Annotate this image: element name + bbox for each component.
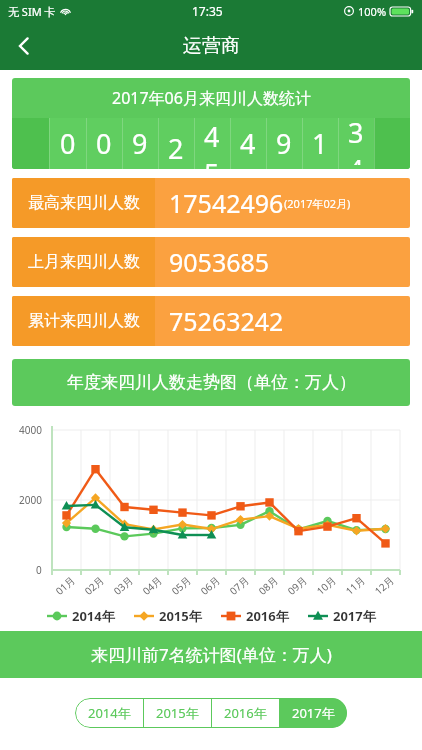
button[interactable]: Back: [0, 22, 48, 70]
staticText: 2014年: [88, 704, 131, 722]
button[interactable]: 2015年: [133, 607, 202, 625]
staticText: 3: [348, 114, 364, 151]
button[interactable]: 来四川前7名统计图(单位：万人): [0, 631, 422, 678]
staticText: 9: [276, 125, 292, 162]
staticText: 2: [168, 130, 184, 167]
staticText: 0: [96, 125, 112, 162]
staticText: 2015年: [159, 607, 202, 625]
staticText: 无 SIM 卡: [8, 4, 56, 19]
staticText: 2017年: [333, 607, 376, 625]
button[interactable]: 2017年06月来四川人数统计: [12, 78, 410, 169]
staticText: 100%: [358, 4, 387, 19]
staticText: 17:35: [192, 3, 223, 19]
button[interactable]: 2017年: [279, 698, 347, 728]
staticText: 4: [204, 118, 220, 155]
staticText: 2016年: [224, 704, 267, 722]
staticText: 5: [204, 155, 220, 169]
staticText: 2016年: [246, 607, 289, 625]
staticText: 0: [60, 125, 76, 162]
button[interactable]: 2014年: [46, 607, 115, 625]
staticText: 来四川前7名统计图(单位：万人): [91, 643, 332, 666]
button[interactable]: 2017年: [307, 607, 376, 625]
staticText: 运营商: [183, 34, 240, 58]
staticText: 75263242: [169, 304, 284, 338]
button[interactable]: 2016年: [211, 698, 279, 728]
staticText: 累计来四川人数: [28, 311, 140, 331]
staticText: 9: [132, 125, 148, 162]
staticText: 4: [348, 151, 364, 165]
staticText: 2015年: [156, 704, 199, 722]
staticText: 年度来四川人数走势图（单位：万人）: [67, 372, 356, 393]
button[interactable]: 年度来四川人数走势图（单位：万人）: [12, 359, 410, 406]
staticText: 9053685: [169, 245, 270, 279]
button[interactable]: 累计来四川人数: [12, 296, 410, 346]
staticText: 2017年: [292, 704, 335, 722]
staticText: 最高来四川人数: [28, 193, 140, 213]
staticText: 2014年: [72, 607, 115, 625]
staticText: 上月来四川人数: [28, 252, 140, 272]
button[interactable]: 最高来四川人数: [12, 178, 410, 228]
staticText: 4: [240, 125, 256, 162]
staticText: (2017年02月): [284, 196, 351, 211]
button[interactable]: 2016年: [220, 607, 289, 625]
staticText: 1: [312, 125, 328, 162]
button[interactable]: 2015年: [143, 698, 211, 728]
staticText: 2017年06月来四川人数统计: [112, 87, 311, 109]
staticText: 17542496: [169, 186, 284, 220]
button[interactable]: 2014年: [75, 698, 143, 728]
button[interactable]: 上月来四川人数: [12, 237, 410, 287]
